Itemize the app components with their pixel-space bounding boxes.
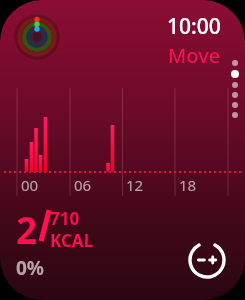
staticText: 710 xyxy=(50,207,80,230)
staticText: 00 xyxy=(21,175,39,195)
staticText: KCAL xyxy=(50,229,94,252)
staticText: 2 xyxy=(16,204,38,254)
button[interactable]: Activity rings xyxy=(14,14,60,60)
staticText: 06 xyxy=(74,175,92,195)
staticText: 10:00 xyxy=(167,12,221,41)
staticText: Move xyxy=(168,42,221,69)
staticText: 18 xyxy=(179,175,197,195)
button[interactable]: Zoom in or out xyxy=(187,240,227,280)
staticText: 0% xyxy=(16,255,45,281)
staticText: 12 xyxy=(126,175,144,195)
